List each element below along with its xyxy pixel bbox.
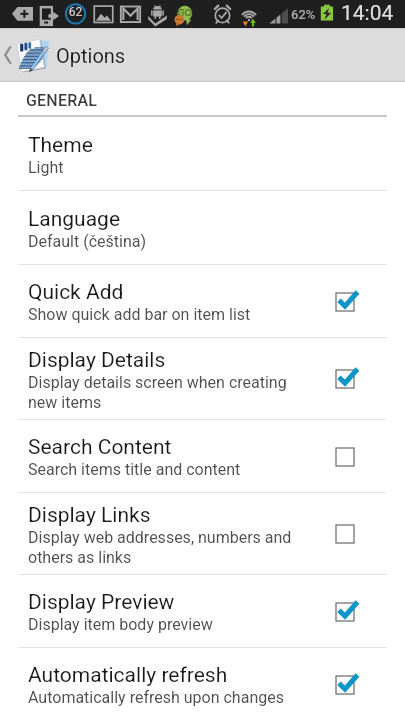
staticText: Language — [28, 207, 121, 232]
staticText: Display web addresses, numbers and other… — [28, 528, 294, 567]
staticText: Automatically refresh — [28, 663, 228, 688]
staticText: 14:04 — [341, 1, 394, 26]
staticText: GENERAL — [26, 91, 98, 110]
staticText: Display Details — [28, 348, 166, 373]
staticText: Default (čeština) — [28, 232, 146, 251]
button[interactable]: Display Details — [0, 338, 405, 420]
button[interactable]: Navigate up — [0, 28, 405, 82]
button[interactable]: Search Content — [0, 420, 405, 493]
staticText: Display Links — [28, 503, 151, 528]
staticText: Display item body preview — [28, 615, 213, 634]
staticText: Light — [28, 158, 64, 177]
button[interactable]: Theme — [0, 117, 405, 191]
staticText: Theme — [28, 133, 93, 158]
button[interactable]: Display Preview — [0, 575, 405, 648]
staticText: Search items title and content — [28, 460, 241, 479]
staticText: Show quick add bar on item list — [28, 305, 251, 324]
staticText: 62 — [67, 5, 84, 19]
staticText: Options — [56, 44, 126, 67]
staticText: Automatically refresh upon changes — [28, 688, 284, 707]
button[interactable]: Language — [0, 191, 405, 265]
staticText: 62% — [291, 7, 316, 22]
button[interactable]: Quick Add — [0, 265, 405, 338]
staticText: Search Content — [28, 435, 172, 460]
staticText: Display details screen when creating new… — [28, 373, 294, 412]
button[interactable]: Automatically refresh — [0, 648, 405, 720]
staticText: Quick Add — [28, 280, 124, 305]
button[interactable]: Display Links — [0, 493, 405, 575]
staticText: Display Preview — [28, 590, 175, 615]
